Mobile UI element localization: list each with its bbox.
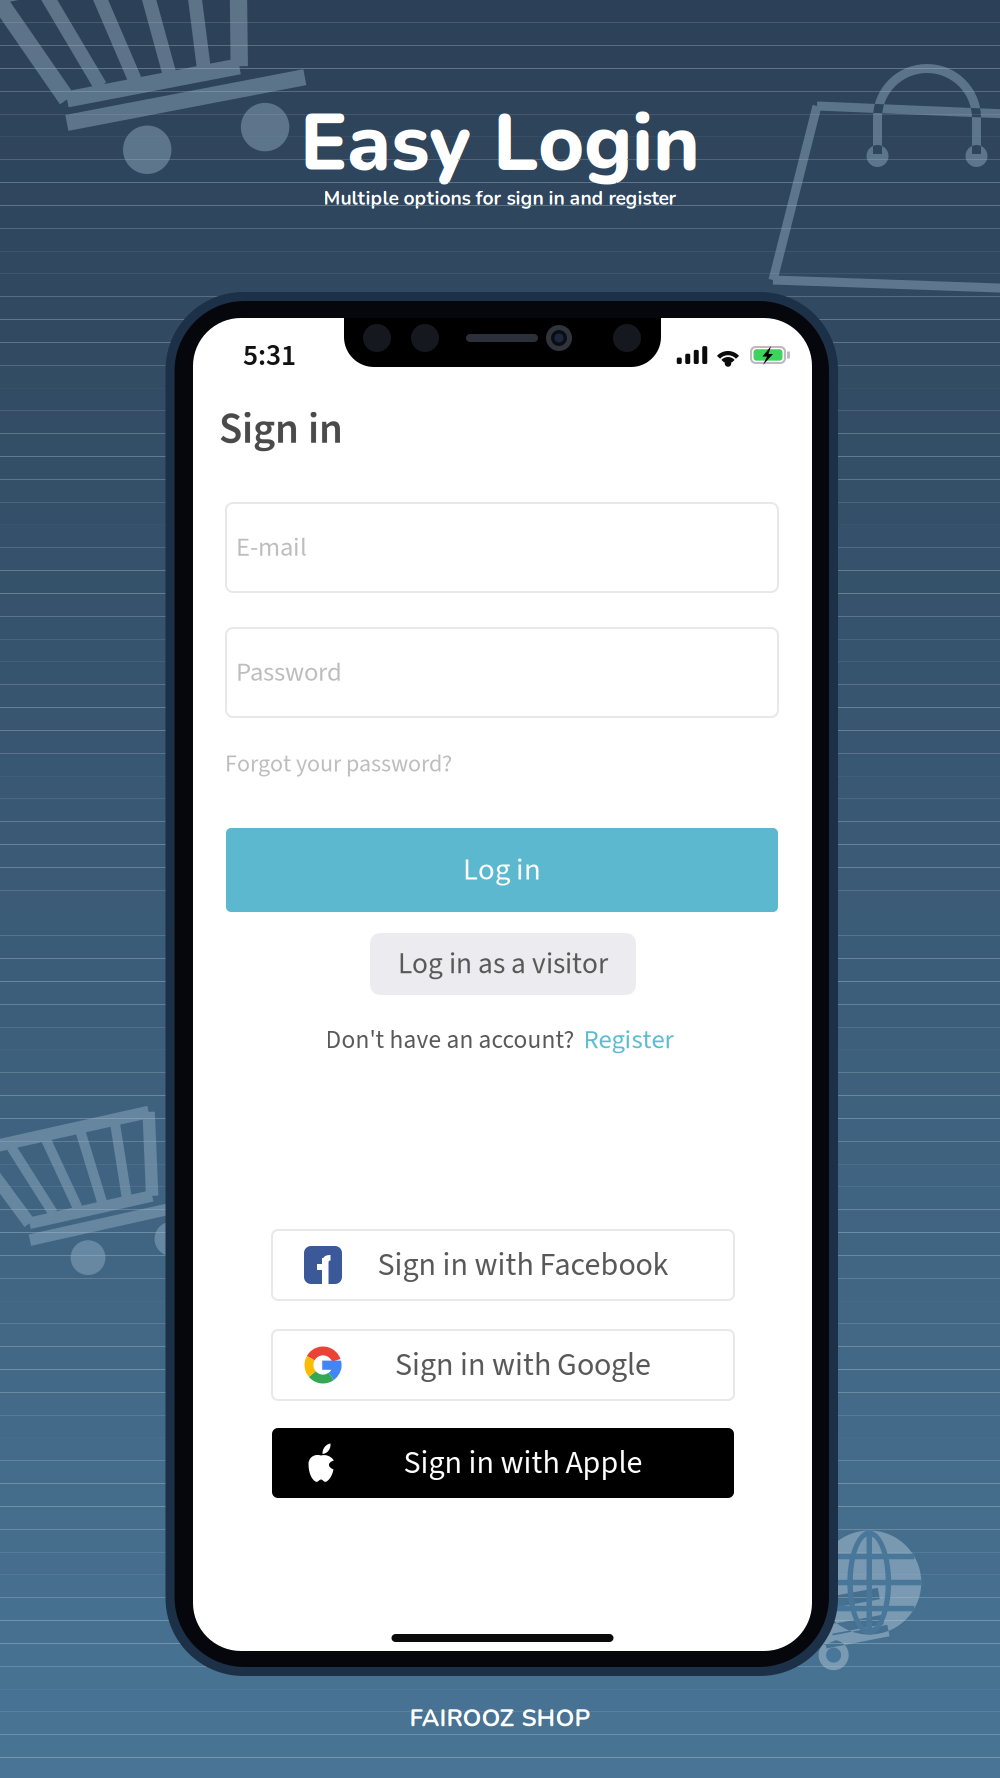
staticText: Log in as a visitor bbox=[398, 943, 608, 985]
button[interactable]: Sign in with Apple bbox=[272, 1428, 734, 1498]
staticText: Forgot your password? bbox=[225, 747, 452, 781]
staticText: Log in bbox=[463, 848, 541, 892]
button[interactable]: Forgot your password? bbox=[225, 744, 452, 784]
staticText: Don't have an account? bbox=[325, 1022, 574, 1058]
staticText: Register bbox=[583, 1021, 673, 1059]
button[interactable]: Log in bbox=[226, 828, 778, 912]
button[interactable]: E-mail bbox=[226, 503, 778, 592]
staticText: FAIROOZ SHOP bbox=[409, 1702, 590, 1735]
staticText: Sign in with Facebook bbox=[377, 1242, 668, 1288]
staticText: Sign in with Apple bbox=[403, 1440, 642, 1486]
staticText: Easy Login bbox=[300, 90, 700, 197]
staticText: Multiple options for sign in and registe… bbox=[323, 185, 676, 212]
staticText: Password bbox=[236, 653, 342, 691]
staticText: 5:31 bbox=[243, 335, 296, 377]
staticText: Sign in with Google bbox=[395, 1342, 651, 1388]
staticText: Sign in bbox=[219, 399, 343, 460]
button[interactable]: Password bbox=[226, 628, 778, 717]
button[interactable]: Sign in with Facebook bbox=[272, 1230, 734, 1300]
button[interactable]: Sign in with Google bbox=[272, 1330, 734, 1400]
staticText: E-mail bbox=[236, 528, 307, 566]
button[interactable]: Register bbox=[583, 1021, 673, 1059]
button[interactable]: Log in as a visitor bbox=[370, 933, 636, 995]
